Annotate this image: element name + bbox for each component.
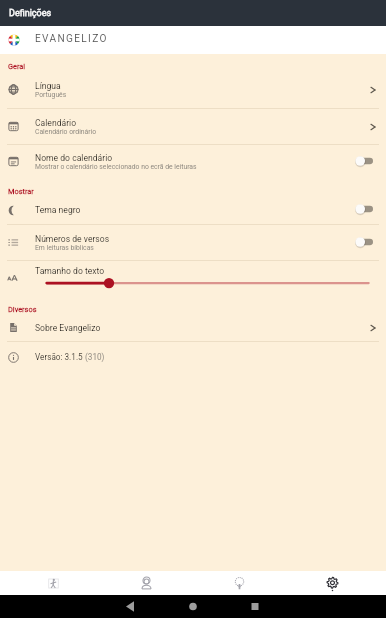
button[interactable]: Santo do dia [100, 571, 193, 595]
button[interactable]: Sobre Evangelizo [0, 314, 386, 341]
staticText: Geral [8, 62, 26, 71]
button[interactable]: Calendário [0, 109, 386, 144]
staticText: Mostrar o calendário seleccionado no ecr… [35, 163, 197, 171]
staticText: Números de versos [35, 234, 110, 244]
staticText: Em leituras bíblicas [35, 244, 94, 252]
staticText: (310) [85, 352, 105, 362]
staticText: Diversos [8, 305, 37, 314]
button[interactable]: Rosário [193, 571, 286, 595]
staticText: Português [35, 91, 67, 99]
button[interactable]: Números de versos [0, 225, 386, 260]
staticText: Versão: 3.1.5 [35, 352, 85, 362]
staticText: Língua [35, 81, 61, 91]
button[interactable]: Leituras [7, 571, 100, 595]
button[interactable]: Tamanho do texto [0, 261, 386, 300]
button[interactable]: Definições [286, 571, 379, 595]
button[interactable]: Versão: 3.1.5 [0, 342, 386, 372]
button[interactable]: Tema negro [0, 196, 386, 224]
staticText: Tema negro [35, 205, 81, 215]
staticText: Definições [9, 8, 52, 19]
staticText: Tamanho do texto [35, 266, 105, 276]
button[interactable]: Nome do calendário [0, 145, 386, 178]
staticText: Mostrar [8, 187, 34, 196]
staticText: Calendário [35, 118, 77, 128]
staticText: EVANGELIZO [35, 33, 108, 45]
staticText: Calendário ordinário [35, 128, 97, 136]
button[interactable]: Língua [0, 71, 386, 108]
staticText: Nome do calendário [35, 153, 113, 163]
staticText: Sobre Evangelizo [35, 323, 101, 333]
